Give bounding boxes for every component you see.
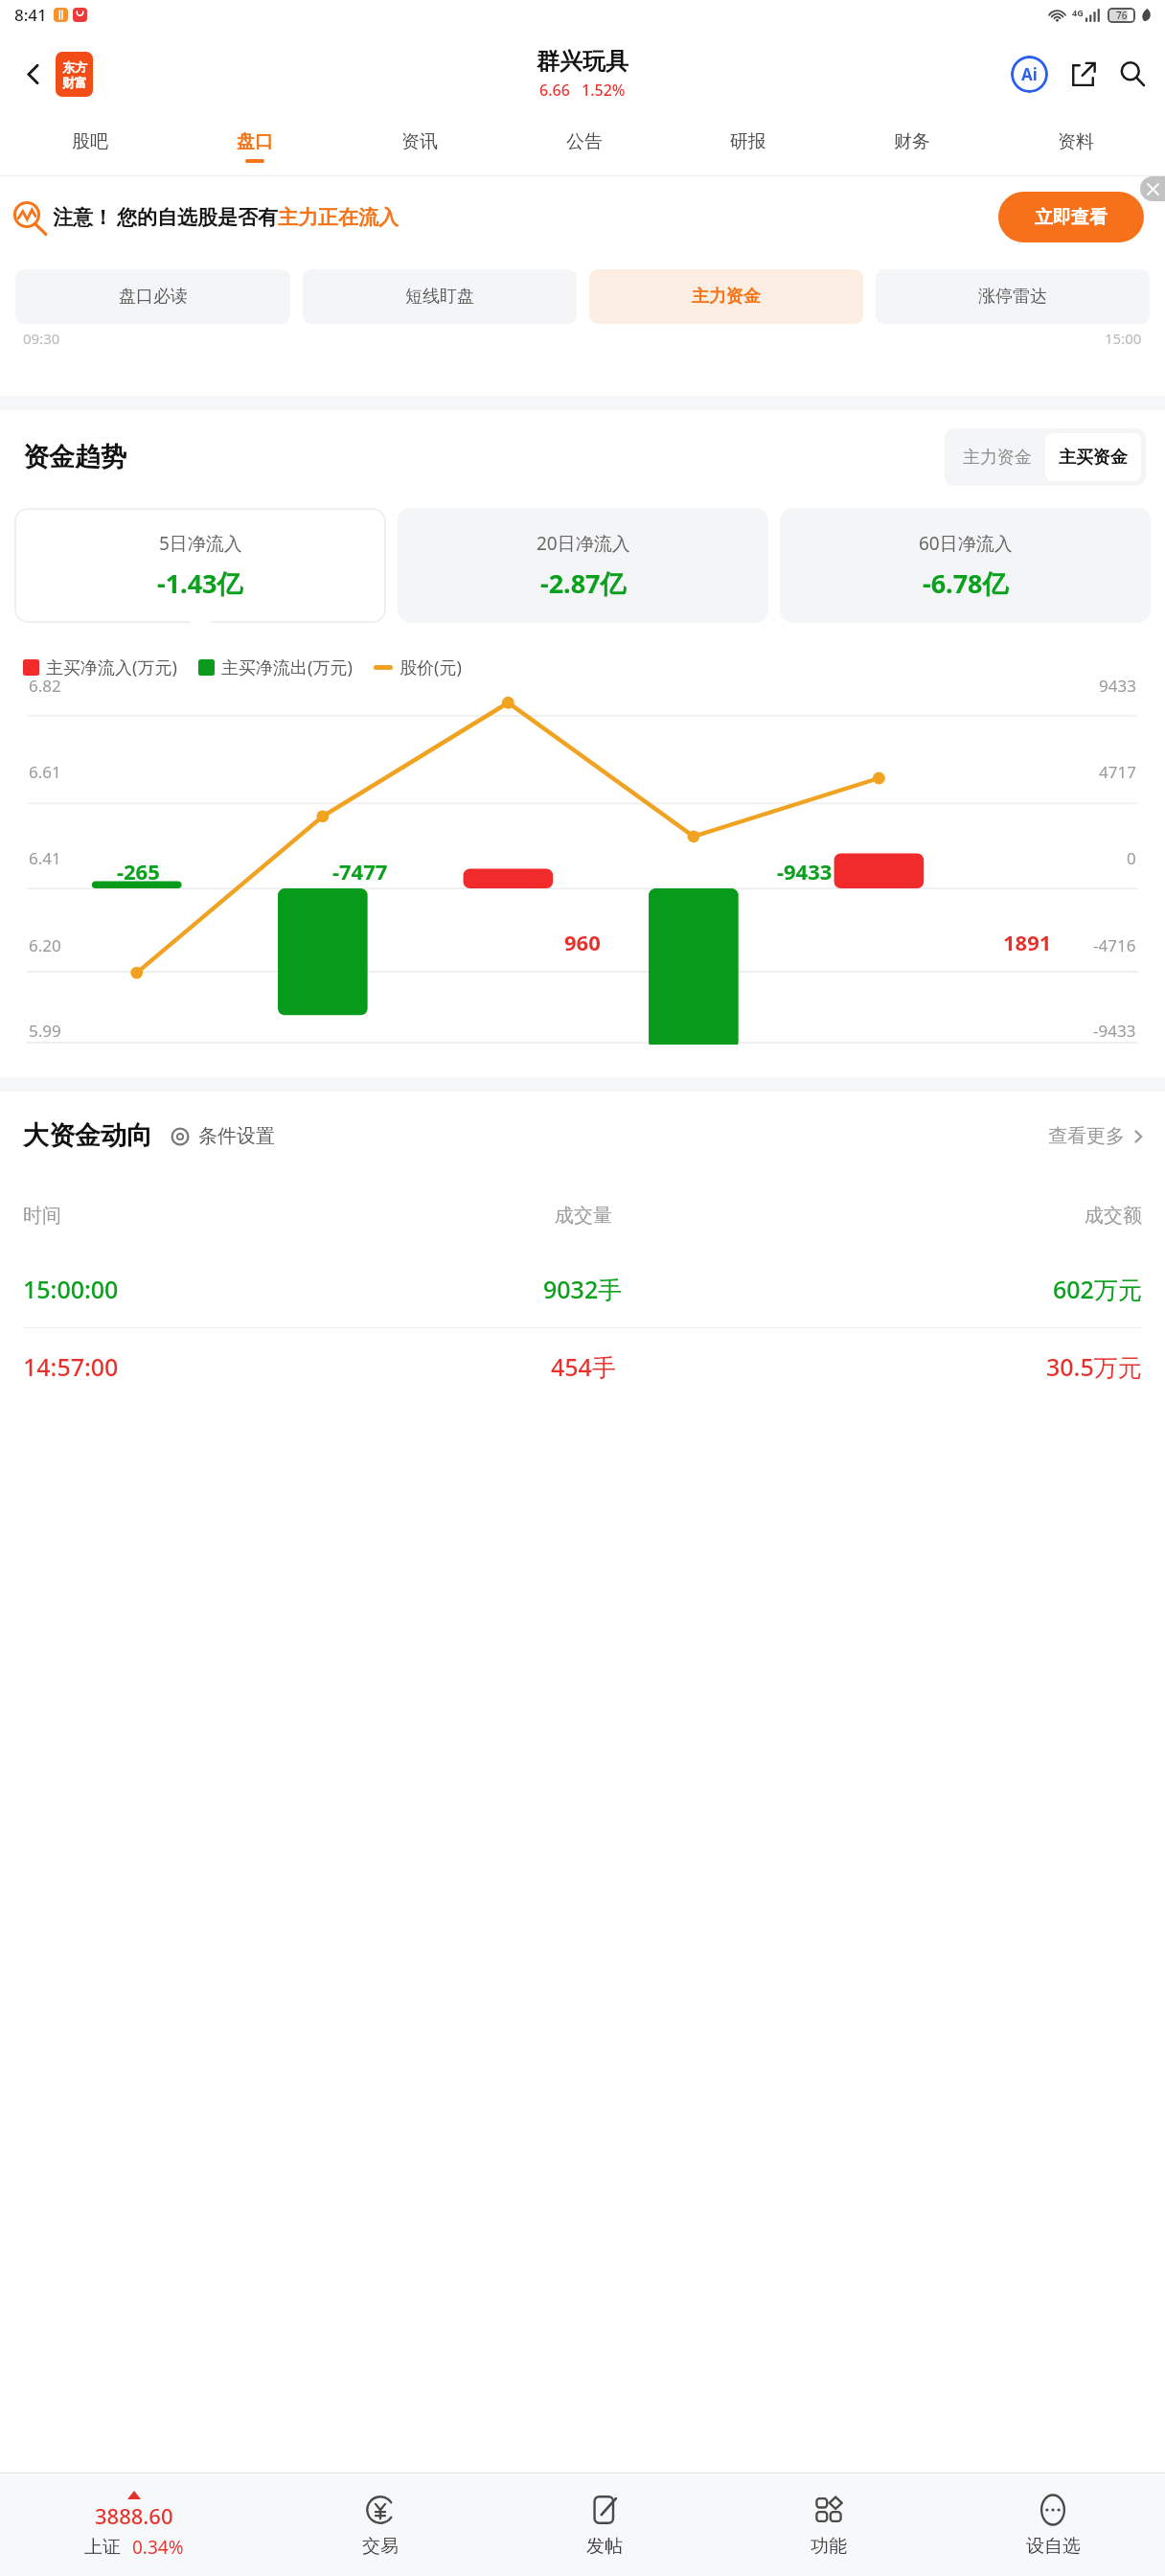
button[interactable]: 发帖 — [492, 2493, 717, 2558]
staticText: 公告 — [566, 130, 603, 153]
button[interactable]: 盘口必读 — [15, 269, 290, 324]
button[interactable]: Close banner — [1140, 176, 1165, 201]
button[interactable]: 股吧 — [8, 117, 172, 176]
staticText: -9433 — [1093, 1020, 1136, 1042]
button[interactable]: AI assistant — [1006, 51, 1052, 97]
staticText: -7477 — [332, 857, 388, 885]
staticText: 资金趋势 — [23, 441, 126, 473]
button[interactable]: 短线盯盘 — [303, 269, 577, 324]
staticText: 成交量 — [555, 1204, 612, 1228]
staticText: 20日净流入 — [537, 531, 630, 556]
staticText: 5日净流入 — [159, 531, 242, 556]
staticText: 股吧 — [72, 130, 108, 153]
button[interactable]: 主力资金 — [949, 433, 1045, 481]
staticText: -2.87亿 — [540, 565, 627, 601]
staticText: -1.43亿 — [157, 565, 243, 601]
staticText: 涨停雷达 — [978, 286, 1047, 308]
staticText: 盘口必读 — [119, 286, 188, 308]
button[interactable]: 财务 — [830, 117, 994, 176]
staticText: 6.41 — [29, 847, 61, 869]
button[interactable]: 主力资金 — [589, 269, 863, 324]
button[interactable]: Search — [1109, 51, 1155, 97]
staticText: 条件设置 — [198, 1124, 275, 1148]
staticText: 76 — [1116, 9, 1128, 22]
staticText: 时间 — [23, 1204, 61, 1228]
button[interactable]: 条件设置 — [169, 1124, 275, 1148]
staticText: 群兴玩具 — [537, 47, 628, 76]
staticText: 您的自选股是否有 — [117, 205, 278, 230]
staticText: 主买资金 — [1059, 447, 1128, 469]
button[interactable]: 交易 — [268, 2493, 492, 2558]
staticText: 9433 — [1099, 675, 1136, 697]
staticText: Ai — [1021, 63, 1038, 85]
staticText: 大资金动向 — [23, 1119, 152, 1152]
staticText: -4716 — [1093, 934, 1136, 956]
staticText: 查看更多 — [1048, 1124, 1125, 1148]
staticText: 6.61 — [29, 761, 61, 783]
staticText: 主力资金 — [963, 447, 1032, 469]
staticText: 成交额 — [1085, 1204, 1142, 1228]
staticText: 功能 — [811, 2535, 847, 2558]
staticText: 资料 — [1058, 130, 1094, 153]
staticText: 短线盯盘 — [405, 286, 474, 308]
button[interactable]: 主买资金 — [1045, 433, 1141, 481]
staticText: 盘口 — [237, 130, 273, 153]
staticText: 5.99 — [29, 1020, 61, 1042]
button[interactable]: 研报 — [666, 117, 830, 176]
button[interactable]: 公告 — [502, 117, 666, 176]
button[interactable]: 涨停雷达 — [876, 269, 1150, 324]
staticText: 6.82 — [29, 675, 61, 697]
staticText: 研报 — [730, 130, 766, 153]
staticText: 设自选 — [1026, 2535, 1081, 2558]
staticText: 9032手 — [543, 1273, 623, 1305]
staticText: 1.52% — [582, 80, 626, 101]
staticText: 960 — [564, 928, 601, 956]
button[interactable]: 功能 — [717, 2493, 941, 2558]
staticText: 1891 — [1003, 928, 1052, 956]
staticText: 602万元 — [1053, 1273, 1142, 1305]
button[interactable]: 资讯 — [337, 117, 502, 176]
staticText: 财务 — [894, 130, 930, 153]
staticText: 主力资金 — [692, 286, 761, 308]
staticText: 主买净流出(万元) — [221, 655, 353, 679]
staticText: 60日净流入 — [919, 531, 1013, 556]
staticText: 09:30 — [23, 329, 60, 348]
staticText: 0.34% — [132, 2535, 184, 2560]
button[interactable]: 3888.60 — [0, 2491, 268, 2560]
button[interactable]: Share — [1060, 51, 1106, 97]
button[interactable]: Back — [10, 51, 56, 97]
staticText: 主买净流入(万元) — [46, 655, 177, 679]
button[interactable]: 立即查看 — [998, 192, 1144, 242]
staticText: 3888.60 — [95, 2501, 173, 2530]
button[interactable]: 14:57:00 — [0, 1328, 1165, 1405]
button[interactable]: 15:00:00 — [0, 1251, 1165, 1327]
button[interactable]: 盘口 — [172, 117, 337, 176]
button[interactable]: 查看更多 — [1048, 1124, 1146, 1148]
button[interactable]: 资料 — [994, 117, 1157, 176]
staticText: -6.78亿 — [923, 565, 1009, 601]
button[interactable]: East Money — [56, 52, 93, 97]
staticText: 交易 — [362, 2535, 399, 2558]
staticText: -9433 — [777, 857, 833, 885]
staticText: 0 — [1127, 847, 1136, 869]
staticText: 15:00:00 — [23, 1273, 119, 1305]
button[interactable]: 设自选 — [941, 2493, 1165, 2558]
staticText: 注意！ — [53, 205, 113, 230]
button[interactable]: 20日净流入 — [398, 508, 768, 623]
staticText: -265 — [117, 857, 160, 885]
staticText: 454手 — [551, 1350, 616, 1383]
staticText: 4717 — [1099, 761, 1136, 783]
staticText: 资讯 — [401, 130, 438, 153]
staticText: 14:57:00 — [23, 1350, 119, 1383]
staticText: 8:41 — [14, 4, 47, 26]
staticText: 上证 — [84, 2536, 121, 2559]
staticText: 6.20 — [29, 934, 61, 956]
button[interactable]: 60日净流入 — [780, 508, 1151, 623]
staticText: 股价(元) — [400, 655, 462, 679]
button[interactable]: 5日净流入 — [14, 508, 386, 623]
